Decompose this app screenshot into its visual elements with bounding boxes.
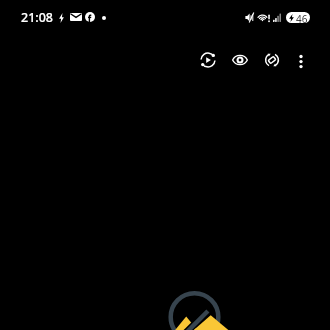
button[interactable]: Preview	[228, 48, 252, 72]
button[interactable]: Motion photo	[196, 48, 220, 72]
staticText: 21:08	[21, 9, 54, 26]
button[interactable]: Rotate	[260, 48, 284, 72]
button[interactable]: More options	[289, 49, 313, 73]
staticText: 46	[296, 12, 308, 23]
